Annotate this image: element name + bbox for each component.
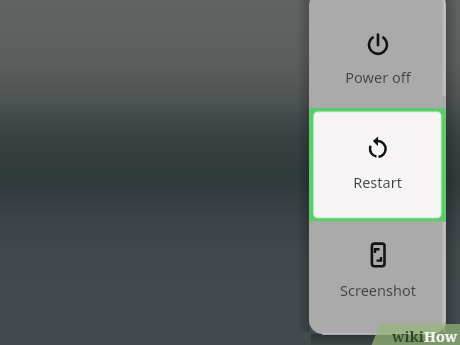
- staticText: Restart: [353, 172, 402, 192]
- button[interactable]: Restart: [309, 108, 446, 222]
- button[interactable]: Power off: [309, 0, 446, 108]
- staticText: Screenshot: [340, 280, 416, 300]
- staticText: Power off: [345, 67, 411, 87]
- staticText: How: [424, 326, 458, 345]
- staticText: wiki: [392, 326, 424, 345]
- button[interactable]: Screenshot: [309, 222, 446, 334]
